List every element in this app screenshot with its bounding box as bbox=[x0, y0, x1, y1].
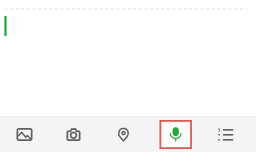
button[interactable]: Dictate bbox=[151, 117, 201, 152]
button[interactable]: Camera bbox=[50, 117, 100, 152]
button[interactable]: Location bbox=[100, 117, 151, 152]
button[interactable]: Photos bbox=[0, 117, 50, 152]
button[interactable]: List bbox=[201, 117, 251, 152]
